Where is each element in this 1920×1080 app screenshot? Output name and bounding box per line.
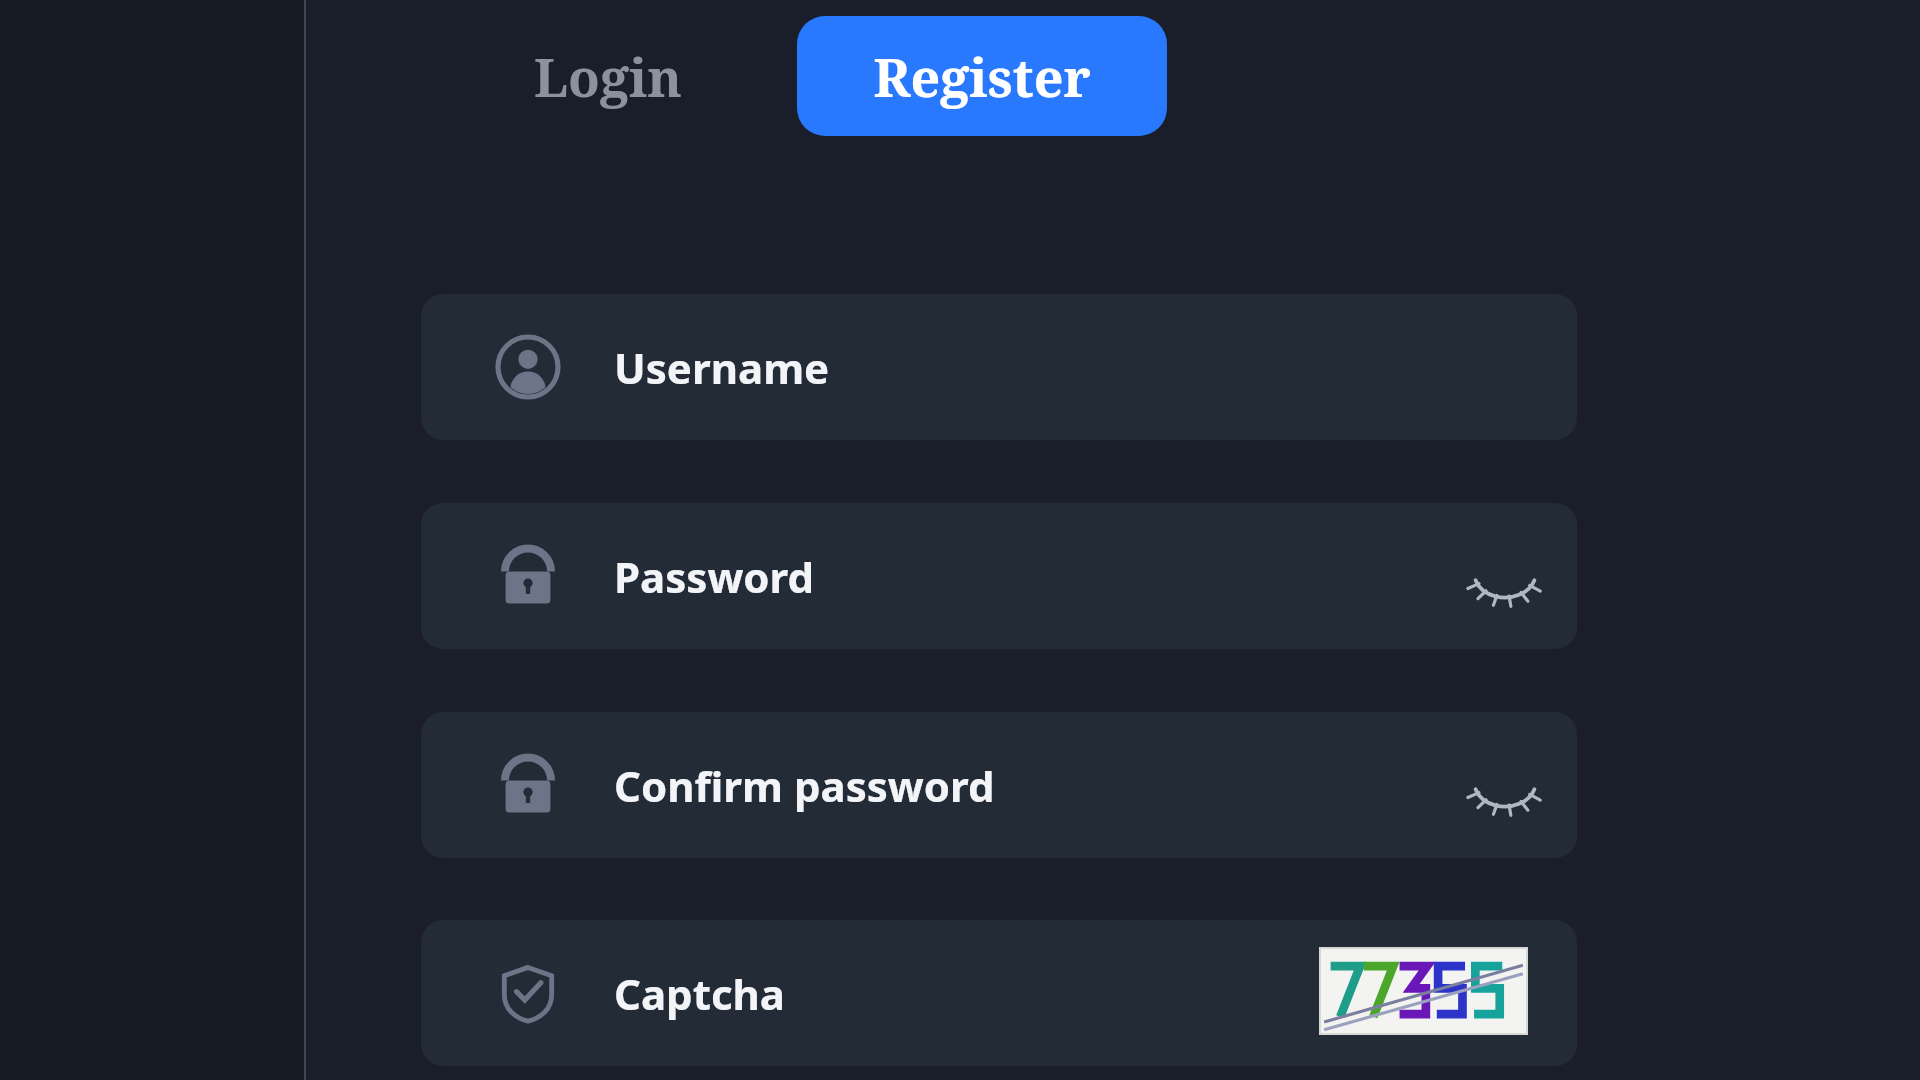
staticText: Login [534,41,683,112]
button[interactable]: Confirm password [421,712,1577,858]
button[interactable]: Captcha image, tap to refresh [1320,948,1527,1034]
button[interactable]: Register [797,16,1167,136]
button[interactable]: Toggle password visibility [1457,737,1553,833]
staticText: Captcha [614,965,786,1022]
staticText: Confirm password [614,757,995,814]
staticText: Username [614,339,830,396]
staticText: Password [614,548,815,605]
staticText: Register [873,41,1091,112]
button[interactable]: Username [421,294,1577,440]
button[interactable]: Toggle password visibility [1457,528,1553,624]
button[interactable]: Captcha [421,920,1577,1066]
button[interactable]: Password [421,503,1577,649]
button[interactable]: Login [498,20,718,132]
